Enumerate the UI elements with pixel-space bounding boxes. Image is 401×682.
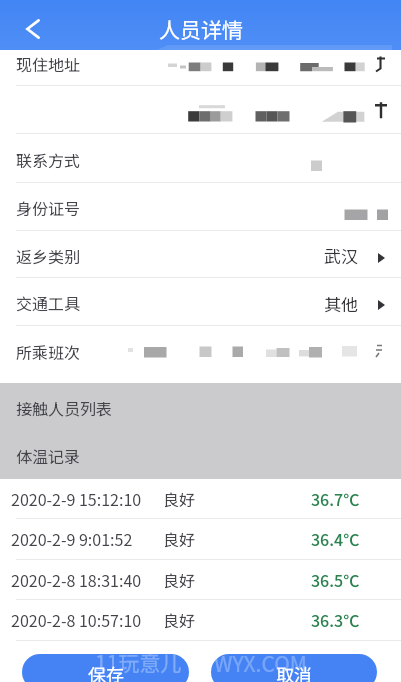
button[interactable]: 2020-2-9 9:01:52 [0, 518, 401, 559]
staticText: 36.7℃ [311, 487, 360, 510]
button[interactable]: 取消 [211, 654, 377, 682]
staticText: 良好 [163, 568, 196, 591]
button[interactable]: 2020-2-9 15:12:10 [0, 479, 401, 518]
staticText: 返乡类别 [16, 244, 81, 267]
button[interactable]: 返乡类别 [0, 230, 401, 277]
staticText: 36.3℃ [311, 608, 360, 631]
button[interactable]: 联系方式 [0, 133, 401, 182]
button[interactable]: 现住地址 [0, 50, 401, 85]
staticText: 所乘班次 [16, 340, 81, 363]
staticText: 36.4℃ [311, 527, 360, 550]
staticText: 2020-2-9 9:01:52 [11, 527, 133, 550]
button[interactable]: Back [0, 0, 56, 50]
button[interactable]: 交通工具 [0, 277, 401, 325]
staticText: 2020-2-8 18:31:40 [11, 568, 142, 591]
staticText: 交通工具 [16, 291, 81, 314]
staticText: 接触人员列表 [16, 396, 113, 419]
staticText: 身份证号 [16, 196, 81, 219]
staticText: 良好 [163, 608, 196, 631]
staticText: 其他 [324, 291, 358, 316]
button[interactable]: 接触人员列表 [0, 383, 401, 431]
staticText: 取消 [276, 661, 312, 682]
staticText: 体温记录 [16, 444, 81, 467]
staticText: 联系方式 [16, 148, 81, 171]
button[interactable]: 所乘班次 [0, 325, 401, 375]
staticText: 武汉 [324, 243, 358, 268]
button[interactable]: 保存 [22, 654, 189, 682]
staticText: 11玩意儿 [95, 647, 182, 677]
staticText: 2020-2-9 15:12:10 [11, 487, 142, 510]
button[interactable]: 体温记录 [0, 431, 401, 479]
staticText: WYX.COM [214, 648, 307, 678]
button[interactable]: 2020-2-8 10:57:10 [0, 599, 401, 640]
button[interactable]: 身份证号 [0, 182, 401, 230]
staticText: 良好 [163, 527, 196, 550]
staticText: 人员详情 [159, 14, 243, 44]
staticText: 36.5℃ [311, 568, 360, 591]
button[interactable]: 2020-2-8 18:31:40 [0, 559, 401, 599]
staticText: 保存 [88, 661, 124, 682]
staticText: 2020-2-8 10:57:10 [11, 608, 142, 631]
button[interactable] [0, 85, 401, 133]
staticText: 现住地址 [16, 52, 81, 75]
staticText: 良好 [163, 487, 196, 510]
